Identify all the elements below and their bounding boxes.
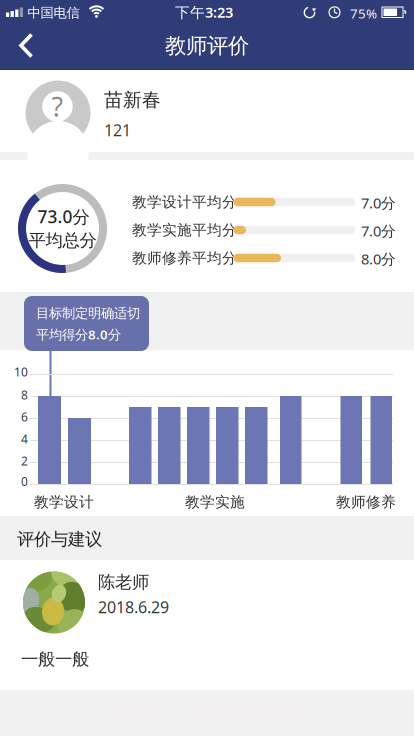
staticText: 8.0分 [361,249,396,268]
staticText: 7.0分 [361,221,396,240]
staticText: 2 [21,453,28,469]
staticText: 6 [21,409,28,425]
staticText: 教师评价 [165,33,249,59]
staticText: 平均总分 [28,230,96,251]
staticText: 4 [21,431,28,447]
button[interactable]: 教学实施 指标3：7分 [187,407,209,484]
button[interactable]: 教学实施 指标5：7分 [245,407,267,484]
staticText: ? [51,89,63,124]
staticText: 陈老师 [98,571,149,593]
button[interactable]: 教师修养 指标2：8分 [370,396,392,484]
staticText: 中国电信 [27,4,79,21]
staticText: 平均得分8.0分 [36,325,121,343]
staticText: 73.0分 [37,205,89,228]
staticText: 教学实施 [185,493,245,511]
button[interactable]: 教师修养 指标1：8分 [340,396,362,484]
staticText: 目标制定明确适切 [36,305,140,321]
staticText: 评价与建议 [17,528,102,550]
button[interactable]: 陈老师 [0,560,414,690]
staticText: 2018.6.29 [98,596,169,618]
staticText: 0 [21,473,28,489]
button[interactable]: 教学实施 指标1：7分 [129,407,151,484]
staticText: 75% [350,4,377,22]
staticText: 教学设计 [34,493,94,511]
staticText: 7.0分 [361,193,396,212]
staticText: 教学实施平均分 [132,221,237,239]
staticText: 下午3:23 [175,2,233,22]
staticText: 121 [104,119,131,141]
button[interactable]: 教学实施 指标6：8分 [280,396,301,484]
staticText: 苗新春 [104,88,161,111]
staticText: 8 [21,387,28,403]
staticText: 教师修养 [336,493,396,511]
staticText: 一般一般 [21,648,89,670]
button[interactable]: 返回 [14,24,44,68]
staticText: 教师修养平均分 [132,249,237,267]
staticText: 10 [14,364,28,380]
staticText: 教学设计平均分 [132,193,237,211]
